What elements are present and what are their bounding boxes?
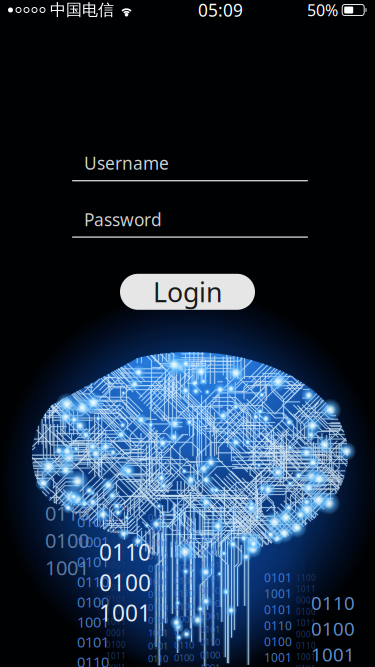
staticText: 0001 xyxy=(106,560,126,571)
staticText: 0110 xyxy=(148,550,168,562)
staticText: 0101 xyxy=(106,594,126,605)
staticText: 0101 xyxy=(148,537,168,549)
staticText: 0100 xyxy=(99,567,151,597)
staticText: 1001 xyxy=(296,652,316,662)
staticText: 1001 xyxy=(174,561,194,574)
staticText: 0001 xyxy=(106,662,126,667)
staticText: 1001 xyxy=(200,661,220,667)
staticText: 1001 xyxy=(200,610,220,622)
staticText: 0101 xyxy=(174,574,194,587)
staticText: 1001 xyxy=(264,586,292,602)
staticText: 1011 xyxy=(296,618,316,628)
staticText: 50% xyxy=(307,0,338,21)
staticText: 1011 xyxy=(106,515,126,525)
staticText: 0110 xyxy=(174,639,194,651)
staticText: 0101 xyxy=(200,571,220,584)
staticText: 0110 xyxy=(264,618,292,633)
staticText: 0101 xyxy=(174,626,194,638)
staticText: 0100 xyxy=(200,649,220,661)
staticText: 0110 xyxy=(148,601,168,613)
staticText: 0101 xyxy=(77,632,109,652)
button[interactable]: Password xyxy=(0,211,375,238)
staticText: 0100 xyxy=(148,665,168,667)
staticText: 0100 xyxy=(148,562,168,575)
staticText: 1001 xyxy=(174,613,194,625)
staticText: 0110 xyxy=(77,652,109,667)
staticText: 0100 xyxy=(148,614,168,626)
staticText: 0001 xyxy=(106,628,126,638)
staticText: 1001 xyxy=(148,575,168,588)
staticText: 1001 xyxy=(148,524,168,536)
staticText: 0101 xyxy=(200,623,220,635)
staticText: 0101 xyxy=(148,588,168,601)
staticText: Username xyxy=(84,151,169,174)
staticText: 1001 xyxy=(77,532,109,551)
staticText: 0110 xyxy=(200,584,220,597)
staticText: 1001 xyxy=(148,627,168,639)
staticText: 0100 xyxy=(200,546,220,558)
staticText: 1100 xyxy=(106,605,126,616)
staticText: 0100 xyxy=(264,633,292,649)
staticText: 0100 xyxy=(296,606,316,617)
staticText: 0001 xyxy=(296,629,316,640)
staticText: 1001 xyxy=(200,559,220,571)
staticText: 1100 xyxy=(106,504,126,514)
staticText: 0110 xyxy=(311,590,355,615)
staticText: 0101 xyxy=(77,512,109,531)
staticText: 0101 xyxy=(296,663,316,667)
staticText: 0001 xyxy=(106,526,126,537)
staticText: 0100 xyxy=(77,592,109,611)
staticText: Login xyxy=(153,274,222,309)
staticText: 1011 xyxy=(106,650,126,661)
staticText: 0110 xyxy=(45,500,89,526)
staticText: 1001 xyxy=(311,642,355,667)
staticText: 0110 xyxy=(174,549,194,561)
staticText: 0100 xyxy=(106,639,126,650)
staticText: 0110 xyxy=(99,537,151,567)
staticText: 1100 xyxy=(296,572,316,583)
staticText: 0110 xyxy=(200,533,220,545)
staticText: 0110 xyxy=(296,640,316,651)
staticText: Password xyxy=(84,208,162,231)
staticText: 0100 xyxy=(106,537,126,548)
staticText: 1001 xyxy=(106,583,126,593)
staticText: 1001 xyxy=(77,612,109,632)
staticText: 0110 xyxy=(77,572,109,591)
staticText: 0100 xyxy=(200,597,220,609)
staticText: 0100 xyxy=(174,600,194,612)
staticText: 1001 xyxy=(45,554,89,581)
staticText: 1011 xyxy=(296,584,316,594)
staticText: 1001 xyxy=(99,598,151,628)
button[interactable]: Login xyxy=(120,274,255,310)
staticText: 0001 xyxy=(296,595,316,606)
button[interactable]: Username xyxy=(0,155,375,181)
staticText: 0100 xyxy=(45,527,89,553)
staticText: 中国电信 xyxy=(50,0,114,20)
staticText: 05:09 xyxy=(198,0,243,21)
staticText: 0101 xyxy=(174,536,194,548)
staticText: 0110 xyxy=(200,636,220,648)
staticText: 0101 xyxy=(148,511,168,523)
staticText: 0100 xyxy=(311,616,355,641)
staticText: 0101 xyxy=(77,552,109,571)
staticText: 1001 xyxy=(174,523,194,535)
staticText: 0110 xyxy=(174,587,194,600)
staticText: 0101 xyxy=(148,640,168,652)
staticText: 1001 xyxy=(264,649,292,665)
staticText: 1011 xyxy=(106,549,126,559)
staticText: 0110 xyxy=(148,652,168,665)
staticText: 0100 xyxy=(174,651,194,664)
staticText: 0101 xyxy=(264,602,292,617)
staticText: 1011 xyxy=(106,617,126,627)
staticText: 0110 xyxy=(106,571,126,582)
staticText: 0101 xyxy=(264,570,292,586)
